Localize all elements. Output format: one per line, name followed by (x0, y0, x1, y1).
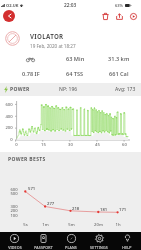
staticText: 218 (72, 206, 80, 212)
button[interactable]: PLANS (57, 232, 85, 250)
staticText: 600 (10, 187, 18, 193)
staticText: 30 (68, 142, 73, 148)
staticText: 1h (115, 222, 121, 228)
staticText: VIOLATOR (30, 32, 64, 40)
staticText: 45 (95, 142, 100, 148)
staticText: 661 Cal (109, 70, 129, 78)
staticText: 200 (5, 125, 13, 131)
button[interactable]: Back (3, 10, 15, 22)
staticText: 200 (10, 208, 18, 214)
staticText: NP: 196 (59, 86, 78, 93)
staticText: 31.3 km (108, 55, 130, 63)
staticText: 5s (23, 222, 28, 228)
staticText: POWER (10, 86, 30, 93)
button[interactable]: Share (114, 11, 125, 22)
staticText: HELP (122, 245, 132, 250)
button[interactable]: VIDEOS (0, 232, 29, 250)
staticText: 171 (119, 207, 127, 213)
staticText: 5m (68, 222, 75, 228)
staticText: 63 Min (66, 55, 85, 63)
staticText: 181 (100, 207, 108, 213)
staticText: SETTINGS (90, 245, 108, 250)
staticText: O2-UK (6, 3, 19, 8)
button[interactable]: SETTINGS (85, 232, 113, 250)
staticText: 300 (10, 204, 18, 210)
staticText: 15 (41, 142, 46, 148)
staticText: 500 (10, 191, 18, 197)
staticText: PASSPORT (34, 245, 53, 250)
staticText: PLANS (65, 245, 77, 250)
staticText: Avg: 173 (115, 86, 136, 93)
staticText: 0 (15, 142, 18, 148)
staticText: 400 (5, 114, 13, 120)
staticText: VIDEOS (8, 245, 22, 250)
button[interactable]: PASSPORT (29, 232, 57, 250)
staticText: 19 Feb, 2020 at 18:27 (30, 43, 76, 49)
staticText: 64 TSS (66, 70, 84, 78)
staticText: 0.78 IF (22, 70, 40, 78)
staticText: 571 (28, 186, 36, 192)
staticText: 600 (5, 102, 13, 108)
staticText: 63% (115, 3, 124, 8)
staticText: 0 (10, 137, 13, 143)
staticText: 1m (42, 222, 49, 228)
button[interactable]: HELP (113, 232, 141, 250)
button[interactable]: Delete (100, 11, 111, 22)
staticText: 20m (94, 222, 103, 228)
staticText: 100 (10, 213, 18, 219)
button[interactable]: Play workout (128, 11, 139, 22)
staticText: 277 (47, 201, 55, 207)
staticText: POWER BESTS (8, 156, 46, 163)
staticText: 60 (122, 142, 127, 148)
staticText: 22:03 (64, 2, 77, 9)
